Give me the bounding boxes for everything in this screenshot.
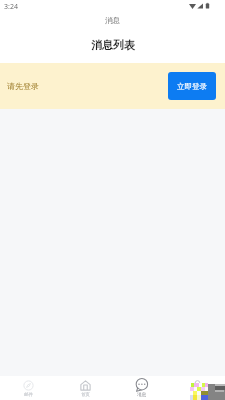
button[interactable]: 首页 — [57, 376, 113, 400]
staticText: 首页 — [81, 392, 90, 398]
staticText: 邮件 — [24, 392, 33, 398]
staticText: 消息列表 — [91, 38, 135, 52]
button[interactable]: 我的 — [169, 376, 225, 400]
staticText: 消息 — [137, 392, 146, 398]
staticText: 我的 — [193, 392, 202, 398]
staticText: 3:24 — [4, 2, 18, 12]
staticText: 请先登录 — [7, 81, 39, 91]
staticText: 消息 — [105, 16, 120, 25]
button[interactable]: 消息 — [113, 376, 169, 400]
button[interactable]: 邮件 — [0, 376, 57, 400]
staticText: 立即登录 — [177, 82, 207, 91]
button[interactable]: 立即登录 — [168, 72, 216, 100]
